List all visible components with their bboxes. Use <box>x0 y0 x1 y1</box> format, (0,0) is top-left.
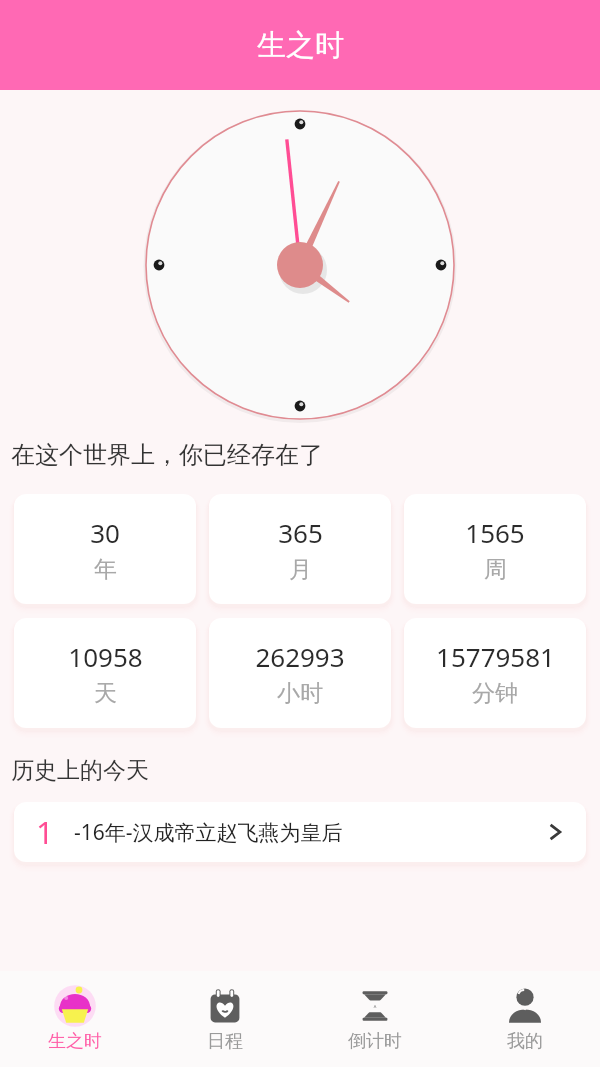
staticText: 262993 <box>255 639 345 674</box>
staticText: 历史上的今天 <box>11 756 149 785</box>
staticText: 年 <box>94 555 117 584</box>
button[interactable]: 262993 <box>209 618 391 728</box>
other: 日程 <box>205 986 245 1026</box>
staticText: 天 <box>94 679 117 708</box>
staticText: 我的 <box>507 1030 543 1053</box>
staticText: 小时 <box>277 679 323 708</box>
button[interactable]: 我的 <box>450 971 600 1067</box>
button[interactable]: 10958 <box>14 618 196 728</box>
other: 倒计时 <box>355 986 395 1026</box>
staticText: 日程 <box>207 1030 243 1053</box>
staticText: 生之时 <box>48 1030 102 1053</box>
button[interactable]: 1565 <box>404 494 586 604</box>
staticText: 周 <box>484 555 507 584</box>
staticText: 月 <box>289 555 312 584</box>
button[interactable]: 15779581 <box>404 618 586 728</box>
staticText: 分钟 <box>472 679 518 708</box>
staticText: 1 <box>36 811 54 853</box>
button[interactable]: 1 <box>14 802 586 862</box>
staticText: 30 <box>90 515 120 550</box>
button[interactable]: 日程 <box>150 971 300 1067</box>
other: 我的 <box>505 986 545 1026</box>
staticText: 倒计时 <box>348 1030 402 1053</box>
staticText: 在这个世界上，你已经存在了 <box>11 440 323 470</box>
button[interactable]: 倒计时 <box>300 971 450 1067</box>
button[interactable]: 生之时 <box>0 971 150 1067</box>
staticText: 15779581 <box>436 639 555 674</box>
button[interactable]: 365 <box>209 494 391 604</box>
staticText: 365 <box>278 515 323 550</box>
staticText: 10958 <box>68 639 143 674</box>
staticText: 生之时 <box>257 27 344 64</box>
staticText: -16年-汉成帝立赵飞燕为皇后 <box>74 818 544 847</box>
other: 生之时 <box>55 986 95 1026</box>
staticText: 1565 <box>465 515 525 550</box>
button[interactable]: 30 <box>14 494 196 604</box>
